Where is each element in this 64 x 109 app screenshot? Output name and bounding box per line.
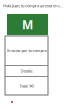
staticText: Detalle [20,68,32,74]
staticText: Total: $0 [19,83,33,89]
staticText: Gracias por tu compra [6,48,46,53]
staticText: M [22,16,33,32]
staticText: Hola Juan, tu compra ya esta en camino [3,3,64,8]
